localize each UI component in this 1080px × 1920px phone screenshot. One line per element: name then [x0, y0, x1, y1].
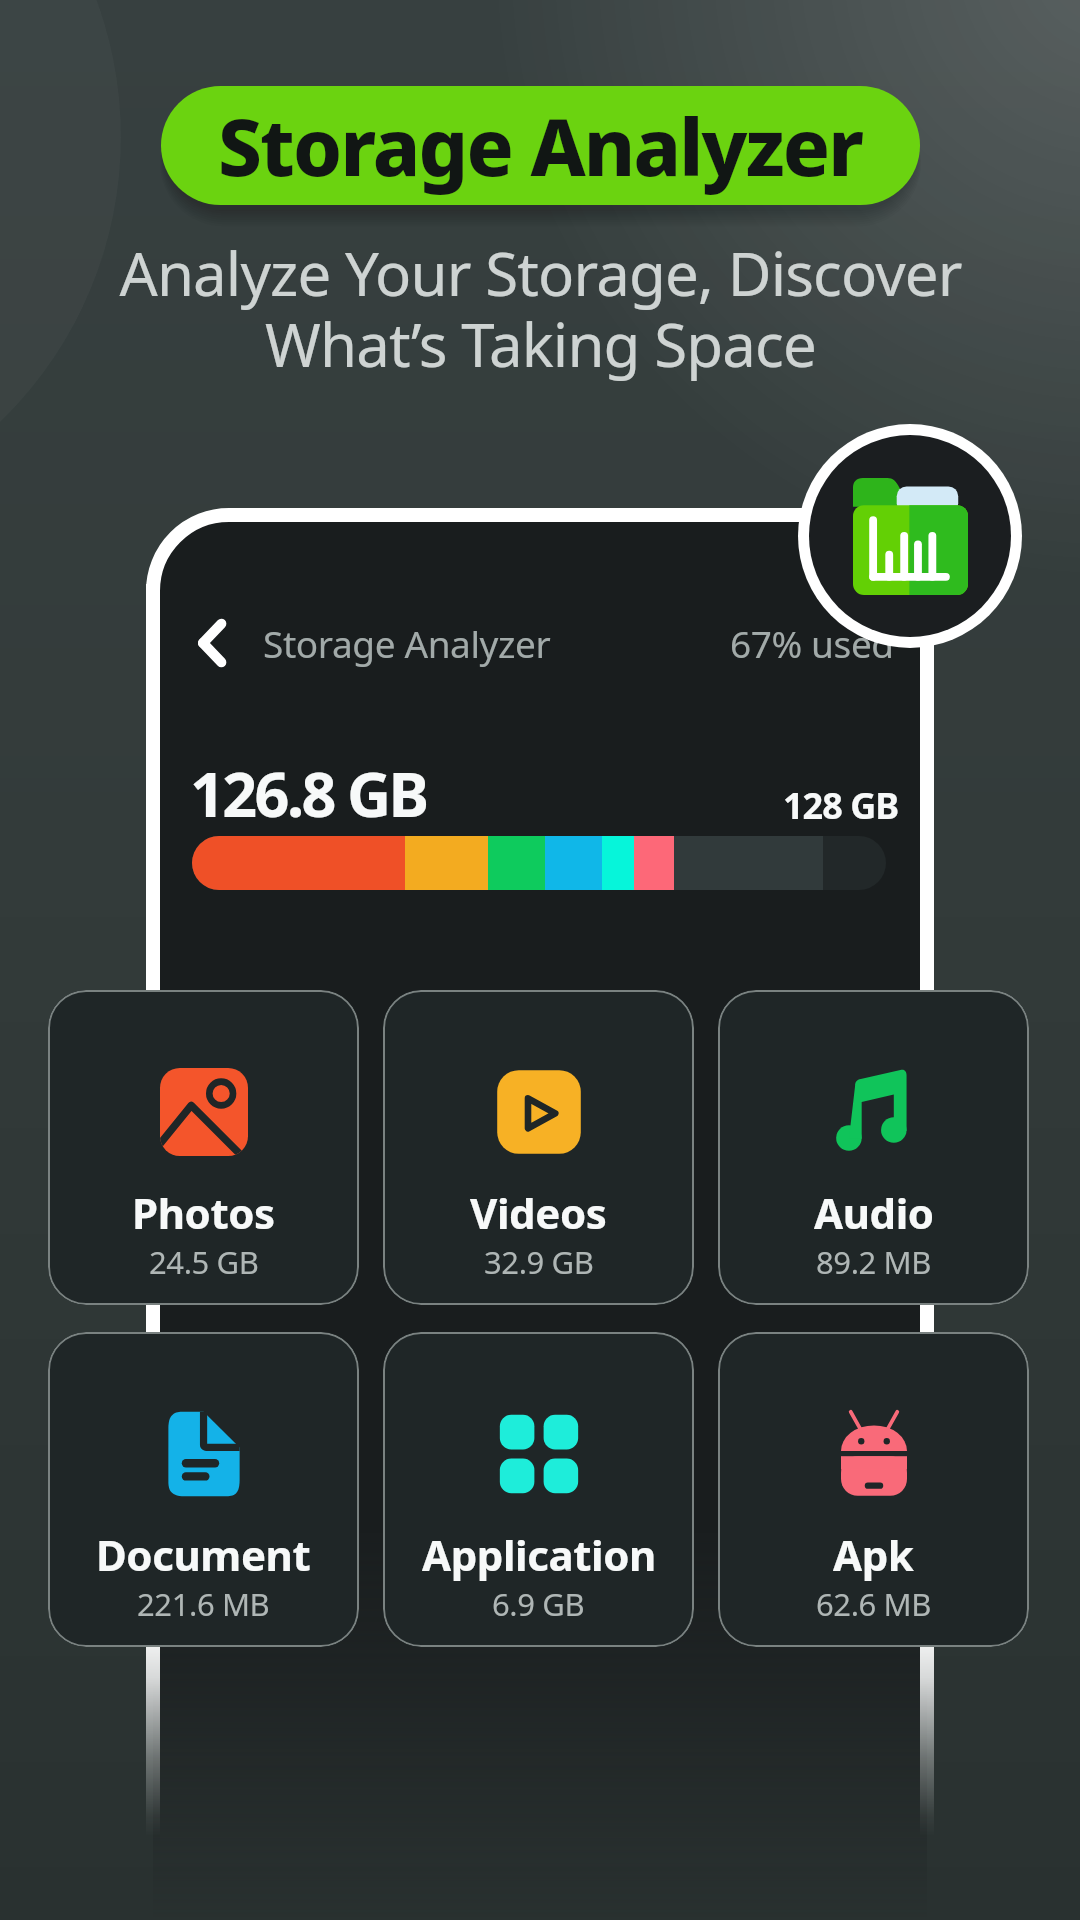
staticText: 67% used [730, 618, 894, 668]
button[interactable]: Document [48, 1332, 359, 1647]
staticText: Apk [833, 1526, 914, 1583]
staticText: 32.9 GB [484, 1241, 594, 1283]
staticText: 221.6 MB [137, 1583, 270, 1625]
button[interactable]: Videos [383, 990, 694, 1305]
staticText: Videos [470, 1184, 607, 1241]
button[interactable]: Apk [718, 1332, 1029, 1647]
staticText: Application [422, 1526, 656, 1583]
staticText: 24.5 GB [149, 1241, 259, 1283]
button[interactable]: Storage Analyzer app icon [809, 435, 1011, 637]
staticText: Analyze Your Storage, Discover What’s Ta… [119, 232, 962, 384]
staticText: Photos [132, 1184, 275, 1241]
staticText: Storage Analyzer [263, 618, 551, 668]
button[interactable]: Photos [48, 990, 359, 1305]
staticText: 62.6 MB [816, 1583, 932, 1625]
staticText: Document [96, 1526, 311, 1583]
button[interactable]: Audio [718, 990, 1029, 1305]
staticText: 89.2 MB [816, 1241, 932, 1283]
staticText: Storage Analyzer [218, 93, 863, 199]
staticText: 6.9 GB [492, 1583, 585, 1625]
staticText: 126.8 GB [190, 752, 427, 835]
staticText: 128 GB [783, 781, 899, 830]
button[interactable]: Back [182, 611, 246, 675]
staticText: Audio [814, 1184, 934, 1241]
button[interactable]: Storage Analyzer [161, 86, 920, 205]
button[interactable]: Application [383, 1332, 694, 1647]
